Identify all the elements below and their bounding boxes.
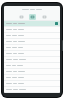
button[interactable] [4, 81, 60, 86]
button[interactable] [4, 75, 60, 80]
button[interactable]: Tab 1 [18, 14, 24, 19]
button[interactable] [4, 33, 60, 38]
button[interactable]: Tab 2 [29, 14, 36, 20]
button[interactable] [4, 51, 60, 56]
button[interactable] [4, 39, 60, 44]
button[interactable]: Tab 3 [41, 14, 47, 19]
button[interactable] [4, 87, 60, 92]
button[interactable]: Open item [4, 21, 60, 26]
button[interactable] [4, 69, 60, 74]
button[interactable] [4, 57, 60, 62]
button[interactable]: Open item [55, 22, 58, 25]
button[interactable] [4, 45, 60, 50]
button[interactable] [4, 63, 60, 68]
other: Power button [62, 40, 63, 51]
button[interactable] [4, 27, 60, 32]
